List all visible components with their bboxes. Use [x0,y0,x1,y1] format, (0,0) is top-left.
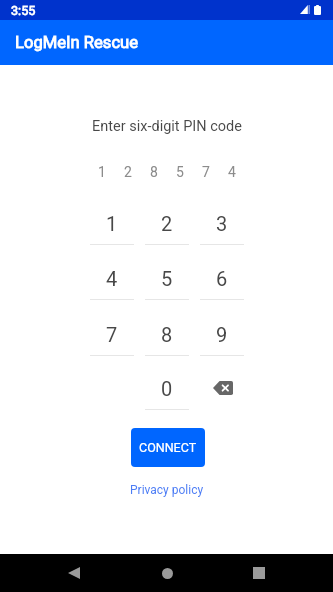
button[interactable]: 8 [145,317,189,355]
staticText: 7 [106,323,118,346]
button[interactable]: 7 [90,317,134,355]
staticText: 3 [216,212,228,235]
staticText: 9 [216,323,228,346]
staticText: 0 [161,377,173,400]
staticText: Privacy policy [130,483,204,497]
button[interactable]: Home [146,554,188,592]
button[interactable]: Back [53,554,95,592]
staticText: 7 [202,164,210,180]
staticText: 3:55 [11,3,36,18]
button[interactable]: 2 [145,206,189,244]
button[interactable]: Privacy policy [125,478,209,502]
other: Backspace [213,381,233,395]
button[interactable]: CONNECT [131,428,205,467]
button[interactable]: Recents [238,554,280,592]
button[interactable]: 3 [200,206,244,244]
staticText: CONNECT [139,440,197,455]
button[interactable]: 9 [200,317,244,355]
staticText: 5 [176,164,184,180]
staticText: 5 [161,267,173,290]
button[interactable]: Backspace [200,371,244,409]
button[interactable]: 1 [90,206,134,244]
button[interactable]: 4 [90,261,134,299]
staticText: 1 [106,212,118,235]
staticText: 1 [98,164,106,180]
staticText: 4 [228,164,236,180]
staticText: Enter six-digit PIN code [92,118,242,135]
staticText: 6 [216,267,228,290]
button[interactable]: 5 [145,261,189,299]
staticText: 2 [161,212,173,235]
staticText: 8 [161,323,173,346]
staticText: LogMeIn Rescue [15,33,139,52]
staticText: 8 [150,164,158,180]
staticText: 2 [124,164,132,180]
button[interactable]: 0 [145,371,189,409]
button[interactable]: 6 [200,261,244,299]
staticText: 4 [106,267,118,290]
